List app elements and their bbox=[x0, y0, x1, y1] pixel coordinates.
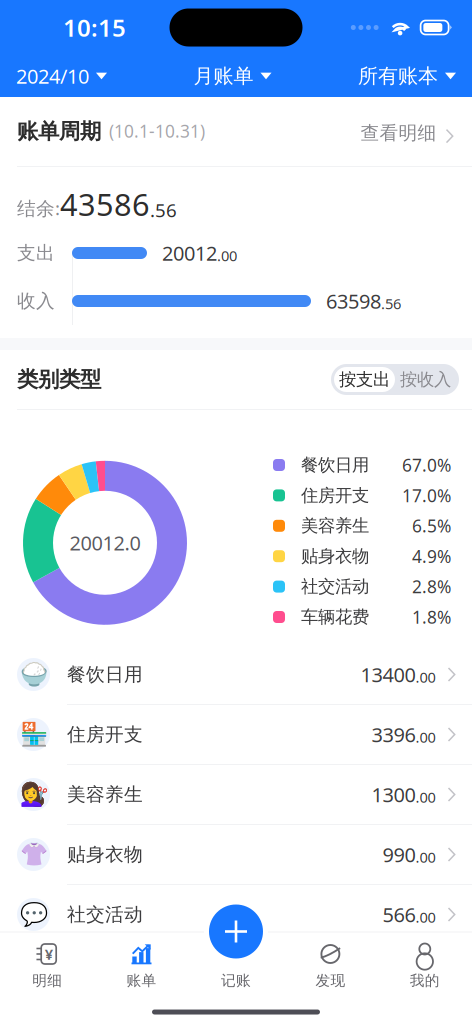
staticText: ¥ bbox=[45, 944, 53, 964]
staticText: 月账单 bbox=[193, 64, 253, 88]
staticText: .00 bbox=[415, 787, 435, 807]
staticText: 类别类型 bbox=[17, 366, 101, 393]
staticText: 社交活动 bbox=[301, 576, 369, 597]
staticText: 2024/10 bbox=[16, 63, 89, 89]
staticText: 明细 bbox=[32, 971, 62, 989]
button[interactable]: 2024/10 bbox=[16, 55, 107, 97]
button[interactable]: 我的 bbox=[378, 932, 472, 1024]
staticText: 👚 bbox=[19, 842, 47, 867]
staticText: .56 bbox=[150, 198, 177, 222]
button[interactable]: 所有账本 bbox=[358, 55, 456, 97]
staticText: 13400 bbox=[360, 661, 415, 688]
staticText: 所有账本 bbox=[358, 64, 438, 88]
staticText: 1300 bbox=[371, 781, 415, 808]
staticText: 990 bbox=[382, 841, 415, 868]
button[interactable]: 🏪 bbox=[0, 705, 472, 764]
button[interactable]: 记账 bbox=[204, 899, 268, 963]
button[interactable]: 按收入 bbox=[395, 367, 456, 392]
button[interactable]: ¥ bbox=[0, 932, 94, 1024]
staticText: 💇‍♀️ bbox=[19, 782, 47, 807]
staticText: .00 bbox=[415, 727, 435, 747]
staticText: 17.0% bbox=[402, 484, 451, 507]
button[interactable]: 发现 bbox=[283, 932, 378, 1024]
button[interactable]: 💬 bbox=[0, 885, 472, 944]
staticText: 🏪 bbox=[19, 722, 47, 747]
staticText: 账单 bbox=[127, 971, 157, 989]
staticText: 20012.0 bbox=[69, 529, 140, 556]
staticText: 美容养生 bbox=[67, 783, 143, 806]
staticText: 6.5% bbox=[412, 514, 451, 537]
staticText: 查看明细 bbox=[360, 122, 436, 145]
staticText: 贴身衣物 bbox=[301, 546, 369, 567]
button[interactable]: 👚 bbox=[0, 825, 472, 884]
button[interactable]: 按支出 bbox=[334, 367, 395, 392]
button[interactable]: 🍚 bbox=[0, 645, 472, 704]
staticText: 结余: bbox=[17, 196, 60, 220]
staticText: 账单周期 bbox=[17, 118, 101, 145]
staticText: 3396 bbox=[371, 721, 415, 748]
staticText: (10.1-10.31) bbox=[109, 120, 205, 143]
button[interactable]: 💇‍♀️ bbox=[0, 765, 472, 824]
staticText: .00 bbox=[217, 246, 237, 265]
staticText: 支出 bbox=[17, 241, 55, 264]
staticText: 4.9% bbox=[412, 545, 451, 568]
staticText: 我的 bbox=[410, 971, 440, 989]
staticText: 20012 bbox=[162, 240, 217, 266]
staticText: 餐饮日用 bbox=[67, 663, 143, 686]
staticText: .00 bbox=[415, 847, 435, 867]
staticText: .56 bbox=[381, 294, 401, 313]
staticText: 63598 bbox=[326, 288, 381, 314]
button[interactable]: 记账 bbox=[189, 932, 283, 1024]
staticText: 记账 bbox=[221, 971, 251, 989]
staticText: 566 bbox=[382, 901, 415, 928]
staticText: 餐饮日用 bbox=[301, 454, 369, 476]
staticText: 43586 bbox=[60, 184, 150, 224]
staticText: .00 bbox=[415, 667, 435, 687]
staticText: 美容养生 bbox=[301, 515, 369, 536]
staticText: 住房开支 bbox=[301, 485, 369, 506]
staticText: .00 bbox=[415, 907, 435, 927]
staticText: 67.0% bbox=[402, 453, 451, 476]
staticText: 发现 bbox=[315, 971, 345, 989]
staticText: 车辆花费 bbox=[301, 606, 369, 628]
staticText: 按支出 bbox=[339, 369, 390, 390]
staticText: 🍚 bbox=[19, 662, 47, 687]
staticText: 收入 bbox=[17, 289, 55, 312]
button[interactable]: 账单 bbox=[94, 932, 189, 1024]
staticText: 💬 bbox=[19, 902, 47, 927]
button[interactable]: 月账单 bbox=[193, 55, 271, 97]
staticText: 住房开支 bbox=[67, 723, 143, 746]
staticText: 贴身衣物 bbox=[67, 843, 143, 866]
staticText: 按收入 bbox=[400, 369, 451, 390]
staticText: 2.8% bbox=[412, 575, 451, 598]
button[interactable]: 账单周期 bbox=[0, 97, 472, 166]
staticText: 社交活动 bbox=[67, 903, 143, 926]
staticText: 1.8% bbox=[412, 605, 451, 628]
staticText: 10:15 bbox=[63, 12, 126, 43]
